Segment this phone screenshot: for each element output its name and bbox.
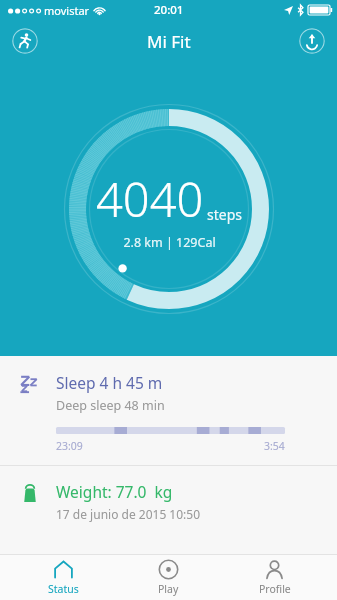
staticText: 17 de junio de 2015 10:50	[56, 506, 201, 522]
staticText: movistar	[44, 3, 90, 18]
staticText: Weight: 77.0 kg	[56, 481, 173, 502]
staticText: Play	[158, 582, 179, 596]
staticText: steps	[207, 205, 242, 224]
staticText: Status	[48, 582, 79, 596]
staticText: Mi Fit	[147, 30, 191, 53]
button[interactable]: Activity	[12, 28, 38, 54]
staticText: Sleep 4 h 45 m	[56, 372, 163, 393]
button[interactable]: Sync	[299, 28, 325, 54]
button[interactable]: Weight: 77.0 kg	[0, 466, 337, 538]
staticText: 23:09	[56, 439, 83, 453]
button[interactable]: Sleep 4 h 45 m	[0, 356, 337, 465]
staticText: 3:54	[264, 439, 285, 453]
staticText: Deep sleep 48 min	[56, 397, 165, 414]
staticText: 4040	[96, 167, 204, 231]
button[interactable]: Status	[21, 555, 106, 600]
button[interactable]: Play	[126, 555, 211, 600]
staticText: 20:01	[154, 2, 184, 18]
staticText: 2.8 km | 129Cal	[123, 234, 216, 251]
staticText: Profile	[259, 582, 291, 596]
button[interactable]: Profile	[232, 555, 317, 600]
